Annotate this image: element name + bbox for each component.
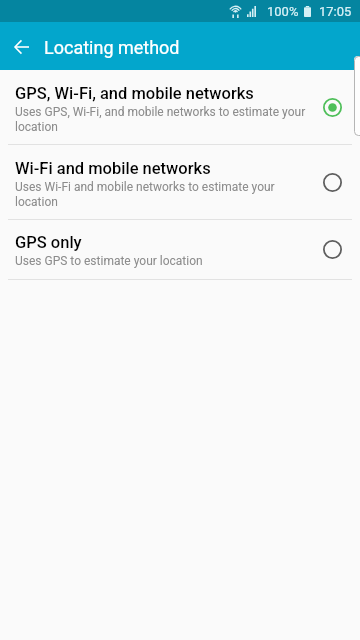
button[interactable]: GPS, Wi-Fi, and mobile networks [0,70,360,144]
button[interactable]: Wi-Fi and mobile networks [0,145,360,219]
staticText: Wi-Fi and mobile networks [15,159,211,178]
button[interactable]: Navigate up [3,22,39,70]
staticText: Uses GPS to estimate your location [15,253,203,268]
staticText: GPS only [15,233,82,252]
button[interactable]: GPS only [0,220,360,279]
button[interactable]: GPS, Wi-Fi, and mobile networks [304,70,360,144]
staticText: Locating method [44,37,180,58]
staticText: GPS, Wi-Fi, and mobile networks [15,84,254,103]
button[interactable]: Wi-Fi and mobile networks [304,145,360,219]
staticText: Uses GPS, Wi-Fi, and mobile networks to … [15,104,308,134]
staticText: Uses Wi-Fi and mobile networks to estima… [15,179,308,209]
button[interactable]: GPS only [304,220,360,279]
staticText: 100% [267,4,299,19]
staticText: 17:05 [319,4,352,19]
